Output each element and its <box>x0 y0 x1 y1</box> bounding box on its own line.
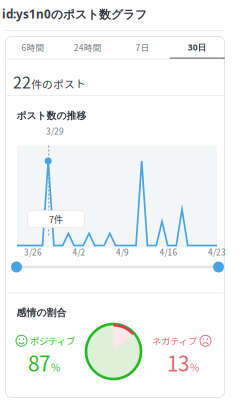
button[interactable]: 7日 <box>115 37 170 59</box>
staticText: 4/2 <box>72 246 85 258</box>
staticText: 3/26 <box>24 246 42 258</box>
staticText: 13 <box>167 347 189 377</box>
staticText: ネガティブ <box>152 334 197 347</box>
staticText: 件のポスト <box>31 76 86 92</box>
button[interactable]: 6時間 <box>5 37 60 59</box>
staticText: 7日 <box>135 41 149 53</box>
staticText: % <box>190 360 199 374</box>
staticText: 87 <box>28 347 50 377</box>
button[interactable]: 30日 <box>170 37 225 59</box>
staticText: % <box>51 360 60 374</box>
staticText: 6時間 <box>21 41 44 53</box>
staticText: ポジティブ <box>30 334 75 347</box>
button[interactable]: 24時間 <box>60 37 115 59</box>
staticText: 7件 <box>49 212 63 225</box>
staticText: 24時間 <box>74 41 102 53</box>
staticText: ポスト数の推移 <box>16 109 86 122</box>
staticText: 4/16 <box>159 246 177 258</box>
staticText: 感情の割合 <box>16 306 66 319</box>
staticText: id:ys1n0のポスト数グラフ <box>2 6 147 22</box>
staticText: 3/29 <box>46 125 64 137</box>
staticText: 4/9 <box>116 246 129 258</box>
staticText: 4/23 <box>208 246 226 258</box>
staticText: 22 <box>13 70 31 93</box>
staticText: 30日 <box>188 41 207 53</box>
